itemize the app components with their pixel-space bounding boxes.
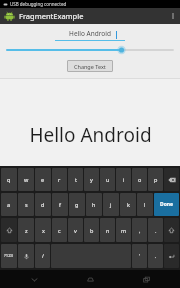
button[interactable]: f (52, 193, 68, 216)
button[interactable]: r (52, 168, 67, 191)
button[interactable]: g (69, 193, 85, 216)
button[interactable]: y (84, 168, 99, 191)
button[interactable]: h (86, 193, 102, 216)
button[interactable]: Back (12, 270, 56, 288)
button[interactable]: l (137, 193, 153, 216)
button[interactable]: More options (166, 8, 180, 24)
staticText: w (24, 176, 29, 183)
staticText: g (75, 201, 79, 208)
button[interactable]: w (18, 168, 34, 191)
staticText: c (58, 227, 61, 234)
button[interactable]: Shift (1, 218, 17, 242)
staticText: / (42, 253, 44, 260)
button[interactable]: Home (68, 270, 112, 288)
button[interactable]: Backspace (164, 168, 179, 191)
button[interactable]: Hello Android (55, 28, 125, 41)
staticText: t (75, 176, 77, 183)
staticText: l (144, 201, 146, 208)
button[interactable]: z (18, 218, 34, 242)
staticText: x (42, 227, 45, 234)
staticText: f (59, 201, 61, 208)
staticText: ?123 (4, 253, 14, 259)
staticText: Hello Android (69, 29, 111, 38)
button[interactable]: e (35, 168, 51, 191)
staticText: e (41, 176, 45, 183)
staticText: Hello Android (29, 122, 152, 148)
button[interactable]: n (100, 218, 115, 242)
button[interactable]: d (35, 193, 51, 216)
button[interactable]: m (116, 218, 131, 242)
button[interactable]: Change Text (67, 60, 113, 72)
button[interactable]: k (120, 193, 136, 216)
button[interactable]: Done (154, 193, 179, 216)
staticText: k (127, 201, 130, 208)
staticText: b (90, 227, 94, 234)
staticText: FragmentExample (19, 11, 84, 21)
staticText: z (25, 227, 28, 234)
staticText: p (154, 176, 158, 183)
staticText: a (7, 201, 11, 208)
button[interactable]: v (68, 218, 83, 242)
staticText: n (106, 227, 110, 234)
button[interactable]: Shift (164, 218, 179, 242)
button[interactable]: t (68, 168, 83, 191)
staticText: , (139, 227, 141, 234)
button[interactable]: i (116, 168, 131, 191)
button[interactable]: . (148, 218, 163, 242)
button[interactable]: o (132, 168, 147, 191)
button[interactable]: c (52, 218, 67, 242)
button[interactable]: u (100, 168, 115, 191)
button[interactable]: / (35, 244, 50, 268)
staticText: i (123, 176, 125, 183)
button[interactable]: j (103, 193, 119, 216)
staticText: ' (139, 253, 141, 260)
staticText: j (110, 201, 112, 208)
staticText: d (41, 201, 45, 208)
staticText: v (74, 227, 77, 234)
staticText: u (106, 176, 110, 183)
staticText: h (92, 201, 96, 208)
button[interactable]: , (132, 218, 147, 242)
staticText: USB debugging connected (10, 1, 67, 7)
staticText: o (138, 176, 142, 183)
button[interactable]: x (35, 218, 51, 242)
staticText: y (90, 176, 93, 183)
staticText: . (155, 227, 157, 234)
button[interactable]: b (84, 218, 99, 242)
staticText: Done (160, 201, 174, 208)
button[interactable]: Recent apps (124, 270, 168, 288)
button[interactable]: ' (132, 244, 147, 268)
staticText: m (121, 227, 127, 234)
staticText: r (58, 176, 61, 183)
staticText: Change Text (74, 63, 106, 70)
button[interactable]: ?123 (1, 244, 17, 268)
staticText: s (25, 201, 28, 208)
button[interactable]: Slider (0, 45, 180, 55)
staticText: q (7, 176, 11, 183)
button[interactable]: Voice input (18, 244, 34, 268)
button[interactable]: Period (148, 244, 163, 268)
button[interactable]: p (148, 168, 163, 191)
button[interactable]: q (1, 168, 17, 191)
button[interactable]: a (1, 193, 17, 216)
button[interactable]: s (18, 193, 34, 216)
button[interactable]: Enter (164, 244, 179, 268)
